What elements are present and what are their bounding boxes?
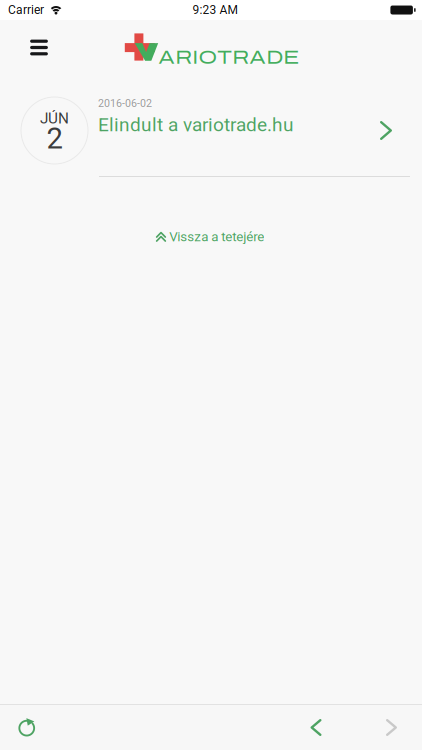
staticText: JÚN [40,109,69,127]
button[interactable]: Vissza a tetejére [147,223,275,251]
staticText: 2016-06-02 [98,97,152,109]
staticText: 2 [46,121,62,156]
button[interactable]: Menu [17,25,61,69]
staticText: Vissza a tetejére [169,229,264,245]
staticText: Carrier [8,3,44,17]
button[interactable]: Forward [357,705,422,750]
staticText: 9:23 AM [192,3,237,17]
staticText: Elindult a variotrade.hu [98,113,294,136]
staticText: ARIOTRADE [158,47,299,68]
button[interactable]: JÚN [0,97,422,164]
button[interactable]: Reload [0,705,53,750]
button[interactable]: Back [281,705,351,750]
